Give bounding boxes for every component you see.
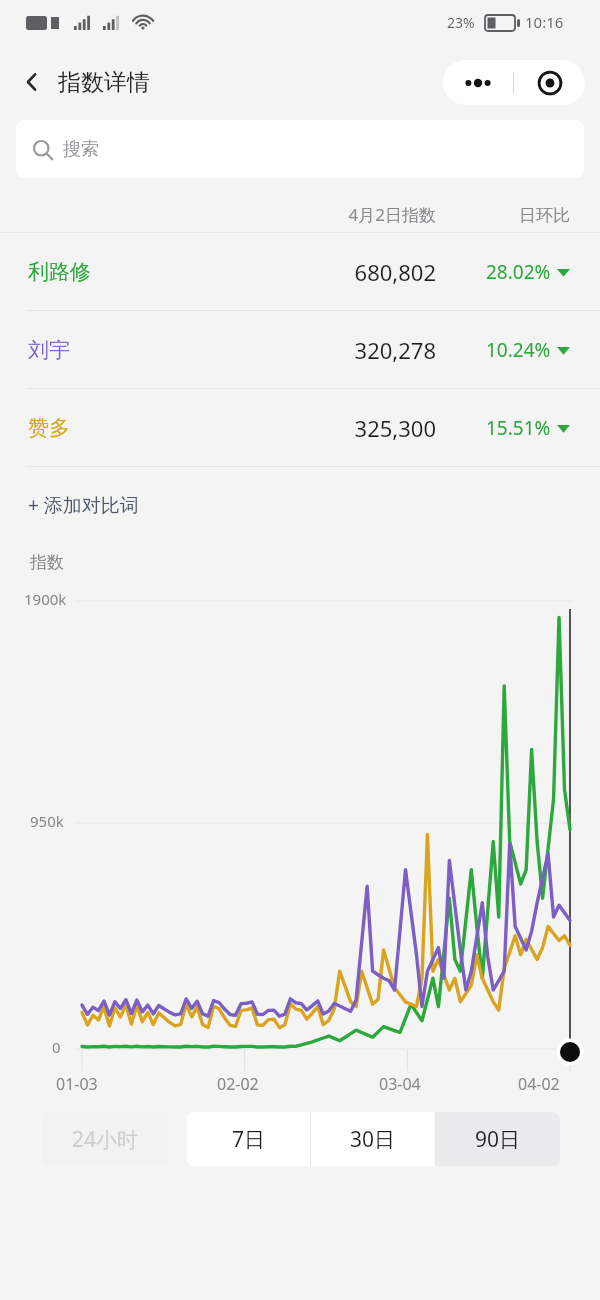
staticText: 指数详情 xyxy=(58,68,150,97)
staticText: 15.51% xyxy=(486,415,551,441)
staticText: 01-03 xyxy=(56,1073,98,1095)
staticText: 28.02% xyxy=(486,259,551,285)
staticText: 24小时 xyxy=(72,1125,139,1154)
staticText: 0 xyxy=(52,1037,61,1057)
button[interactable]: 7日 xyxy=(187,1112,310,1166)
button[interactable]: 24小时 xyxy=(42,1112,168,1166)
staticText: 1900k xyxy=(24,589,67,609)
staticText: 4月2日指数 xyxy=(306,203,436,226)
button[interactable]: Back xyxy=(8,58,56,106)
staticText: 指数 xyxy=(30,552,64,573)
button[interactable]: 90日 xyxy=(436,1112,560,1166)
staticText: 90日 xyxy=(475,1125,521,1154)
button[interactable]: Mini program xyxy=(514,60,585,105)
staticText: 30日 xyxy=(350,1125,396,1154)
staticText: 02-02 xyxy=(217,1073,259,1095)
button[interactable]: 赞多 xyxy=(0,389,600,466)
staticText: 10:16 xyxy=(525,12,564,32)
staticText: 23% xyxy=(447,13,475,32)
staticText: 04-02 xyxy=(518,1073,560,1095)
staticText: 7日 xyxy=(232,1125,266,1154)
staticText: 325,300 xyxy=(306,413,436,443)
button[interactable]: 搜索 xyxy=(16,120,584,178)
staticText: 利路修 xyxy=(28,259,91,285)
button[interactable]: + 添加对比词 xyxy=(0,467,600,542)
staticText: 刘宇 xyxy=(28,337,70,363)
staticText: 320,278 xyxy=(306,335,436,365)
staticText: 10.24% xyxy=(486,337,551,363)
staticText: 680,802 xyxy=(306,257,436,287)
staticText: 03-04 xyxy=(379,1073,421,1095)
button[interactable]: 30日 xyxy=(311,1112,435,1166)
staticText: 搜索 xyxy=(63,138,99,161)
staticText: 赞多 xyxy=(28,415,70,441)
button[interactable]: More options xyxy=(443,60,513,105)
staticText: + 添加对比词 xyxy=(28,492,139,518)
staticText: 日环比 xyxy=(456,205,570,226)
button[interactable]: 利路修 xyxy=(0,233,600,310)
staticText: 950k xyxy=(30,811,64,831)
button[interactable]: 刘宇 xyxy=(0,311,600,388)
